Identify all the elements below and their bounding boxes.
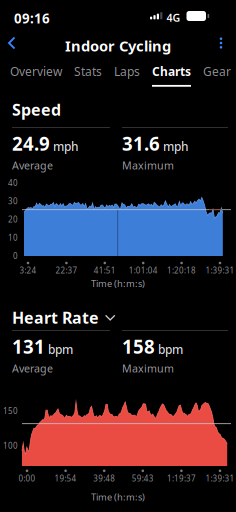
staticText: 0 bbox=[13, 251, 18, 261]
staticText: 1:01:04 bbox=[129, 265, 158, 276]
staticText: bpm bbox=[48, 341, 73, 357]
button[interactable]: Back bbox=[2, 32, 22, 54]
staticText: bpm bbox=[158, 341, 183, 357]
staticText: 150 bbox=[3, 405, 18, 416]
staticText: Overview bbox=[10, 63, 62, 79]
staticText: 40 bbox=[8, 177, 18, 188]
staticText: Stats bbox=[74, 63, 102, 79]
staticText: Time (h:m:s) bbox=[91, 277, 145, 290]
staticText: 10 bbox=[8, 232, 18, 243]
button[interactable]: Laps bbox=[114, 63, 140, 87]
staticText: 19:54 bbox=[55, 473, 77, 484]
staticText: 09:16 bbox=[14, 9, 50, 27]
staticText: 1:19:37 bbox=[167, 473, 196, 484]
staticText: 131 bbox=[12, 334, 45, 359]
button[interactable]: Charts bbox=[152, 63, 191, 87]
staticText: 1:39:31 bbox=[205, 473, 234, 484]
staticText: 30 bbox=[8, 196, 18, 206]
staticText: Maximum bbox=[122, 361, 174, 375]
staticText: Time (h:m:s) bbox=[91, 491, 145, 503]
button[interactable]: Heart Rate bbox=[12, 307, 115, 328]
staticText: Laps bbox=[114, 63, 140, 79]
staticText: 0:00 bbox=[18, 473, 35, 484]
button[interactable]: More options bbox=[212, 32, 230, 54]
button[interactable]: Gear bbox=[203, 63, 231, 87]
staticText: 31.6 bbox=[122, 131, 160, 156]
staticText: mph bbox=[53, 138, 79, 154]
staticText: 4G bbox=[166, 10, 180, 25]
button[interactable]: Overview bbox=[10, 63, 62, 87]
staticText: Charts bbox=[152, 63, 191, 79]
staticText: Average bbox=[12, 361, 53, 375]
staticText: 41:51 bbox=[94, 265, 116, 276]
staticText: 1:39:31 bbox=[205, 265, 234, 276]
staticText: Gear bbox=[203, 63, 231, 79]
staticText: 3:24 bbox=[19, 265, 36, 276]
staticText: 100 bbox=[3, 440, 18, 451]
staticText: mph bbox=[163, 138, 189, 154]
button[interactable]: Stats bbox=[74, 63, 102, 87]
staticText: 24.9 bbox=[12, 131, 50, 156]
staticText: 1:20:18 bbox=[167, 265, 196, 276]
staticText: 158 bbox=[122, 334, 155, 359]
staticText: 59:43 bbox=[132, 473, 154, 484]
staticText: 22:37 bbox=[55, 265, 77, 276]
staticText: Maximum bbox=[122, 158, 174, 172]
staticText: Speed bbox=[12, 99, 61, 120]
staticText: Average bbox=[12, 158, 53, 172]
staticText: 39:48 bbox=[93, 473, 115, 484]
staticText: Heart Rate bbox=[12, 307, 99, 328]
staticText: 20 bbox=[8, 214, 18, 225]
staticText: Indoor Cycling bbox=[65, 36, 171, 55]
